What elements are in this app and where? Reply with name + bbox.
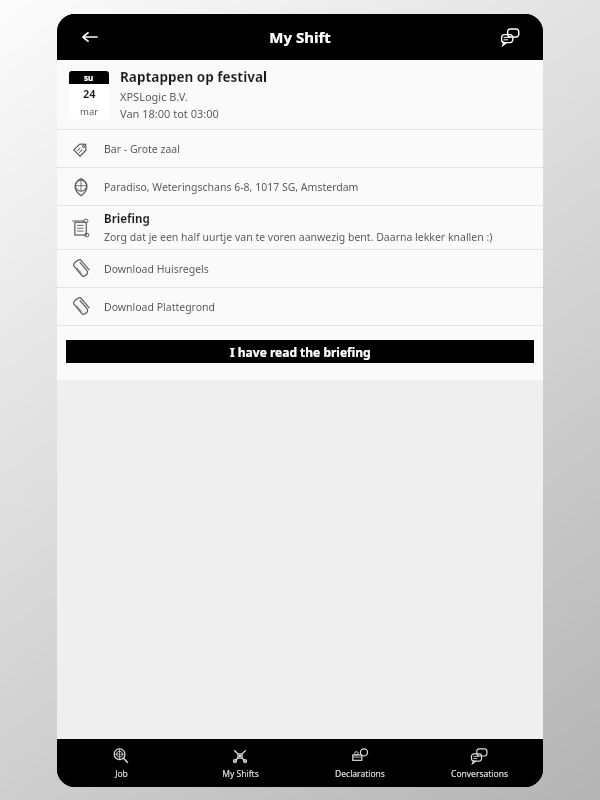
- staticText: Download Plattegrond: [104, 300, 531, 314]
- staticText: Zorg dat je een half uurtje van te voren…: [104, 230, 493, 244]
- button[interactable]: My Shifts: [185, 739, 295, 787]
- staticText: Van 18:00 tot 03:00: [120, 106, 219, 121]
- button[interactable]: Job: [66, 739, 176, 787]
- staticText: mar: [80, 105, 99, 118]
- staticText: Conversations: [451, 768, 508, 780]
- staticText: Bar - Grote zaal: [104, 142, 531, 156]
- staticText: My Shift: [269, 27, 331, 47]
- button[interactable]: Bar - Grote zaal: [57, 130, 543, 167]
- staticText: 24: [83, 86, 96, 101]
- staticText: Download Huisregels: [104, 262, 531, 276]
- button[interactable]: Conversations: [491, 18, 529, 56]
- button[interactable]: su: [57, 60, 543, 129]
- button[interactable]: Conversations: [424, 739, 534, 787]
- button[interactable]: Declarations: [305, 739, 415, 787]
- staticText: Declarations: [335, 768, 385, 780]
- button[interactable]: Download Huisregels: [57, 250, 543, 287]
- staticText: su: [84, 72, 94, 83]
- button[interactable]: Download Plattegrond: [57, 288, 543, 325]
- button[interactable]: Paradiso, Weteringschans 6-8, 1017 SG, A…: [57, 168, 543, 205]
- staticText: My Shifts: [222, 768, 259, 780]
- staticText: Raptappen op festival: [120, 68, 268, 86]
- staticText: Paradiso, Weteringschans 6-8, 1017 SG, A…: [104, 180, 531, 194]
- staticText: I have read the briefing: [230, 344, 371, 360]
- button[interactable]: Back: [71, 18, 109, 56]
- button[interactable]: I have read the briefing: [66, 340, 534, 363]
- staticText: XPSLogic B.V.: [120, 89, 188, 104]
- button[interactable]: Briefing: [57, 206, 543, 249]
- staticText: Job: [115, 768, 128, 780]
- staticText: Briefing: [104, 211, 150, 227]
